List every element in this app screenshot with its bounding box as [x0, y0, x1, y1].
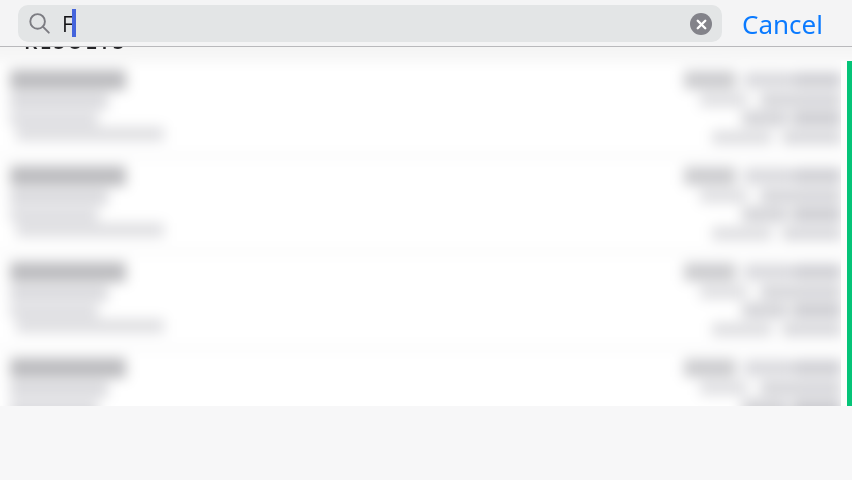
staticText: Cancel: [742, 6, 823, 41]
other: Search: [18, 5, 722, 42]
staticText: RESULTS: [24, 27, 127, 56]
button[interactable]: Search: [18, 5, 722, 42]
button[interactable]: Clear text: [690, 13, 712, 35]
staticText: F: [62, 10, 73, 39]
button[interactable]: Cancel: [722, 0, 852, 47]
